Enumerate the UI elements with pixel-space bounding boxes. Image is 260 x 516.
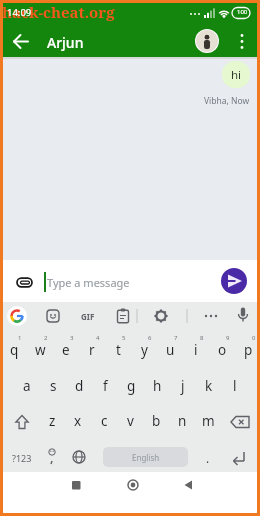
staticText: . xyxy=(206,450,210,466)
button[interactable] xyxy=(66,442,92,474)
button[interactable]: b xyxy=(143,405,169,437)
button[interactable]: q xyxy=(1,334,27,366)
staticText: 8 xyxy=(200,334,204,342)
staticText: 4 xyxy=(96,334,100,342)
staticText: z xyxy=(49,412,56,430)
button[interactable]: e xyxy=(53,334,79,366)
button[interactable]: g xyxy=(118,370,144,402)
button[interactable]: c xyxy=(91,405,117,437)
staticText: hi xyxy=(231,67,242,83)
staticText: o xyxy=(218,341,227,359)
button[interactable] xyxy=(8,406,36,438)
staticText: ?123 xyxy=(12,452,32,464)
button[interactable]: h xyxy=(144,370,170,402)
button[interactable]: m xyxy=(195,405,221,437)
staticText: 14:09 xyxy=(7,6,32,19)
staticText: Type a message xyxy=(47,275,130,290)
staticText: 1 xyxy=(18,334,22,342)
staticText: 5 xyxy=(122,334,126,342)
button[interactable]: d xyxy=(66,370,92,402)
button[interactable] xyxy=(224,406,256,438)
staticText: h xyxy=(153,377,162,395)
staticText: y xyxy=(141,341,148,359)
staticText: d xyxy=(75,377,84,395)
staticText: 100 xyxy=(237,8,248,16)
staticText: 7 xyxy=(174,334,178,342)
staticText: 9 xyxy=(226,334,230,342)
button[interactable] xyxy=(45,308,61,324)
button[interactable]: v xyxy=(117,405,143,437)
staticText: l xyxy=(233,377,237,395)
button[interactable]: English xyxy=(103,447,188,467)
staticText: 2 xyxy=(44,334,48,342)
button[interactable] xyxy=(125,477,141,493)
staticText: j xyxy=(181,377,185,395)
staticText: Vibha, Now xyxy=(204,95,250,107)
button[interactable]: hi xyxy=(222,61,250,88)
staticText: 3 xyxy=(70,334,74,342)
button[interactable]: r xyxy=(79,334,105,366)
button[interactable]: u xyxy=(157,334,183,366)
staticText: m xyxy=(202,412,215,430)
button[interactable]: y xyxy=(131,334,157,366)
button[interactable]: . xyxy=(196,442,220,474)
staticText: r xyxy=(89,341,95,359)
staticText: English xyxy=(132,452,160,463)
staticText: t xyxy=(116,341,121,359)
staticText: i xyxy=(194,341,198,359)
staticText: s xyxy=(50,377,57,395)
staticText: c xyxy=(101,412,108,430)
button[interactable]: s xyxy=(40,370,66,402)
button[interactable]: ?123 xyxy=(6,442,38,474)
button[interactable]: x xyxy=(65,405,91,437)
staticText: GIF xyxy=(81,311,95,322)
button[interactable] xyxy=(14,273,36,292)
button[interactable]: o xyxy=(209,334,235,366)
staticText: k xyxy=(205,377,213,395)
staticText: 6 xyxy=(148,334,152,342)
button[interactable] xyxy=(203,310,221,322)
staticText: Arjun xyxy=(47,33,84,52)
staticText: v xyxy=(127,412,134,430)
button[interactable]: Type a message xyxy=(47,264,207,300)
staticText: a xyxy=(23,377,31,395)
staticText: n xyxy=(178,412,187,430)
staticText: x xyxy=(74,412,82,430)
button[interactable] xyxy=(153,308,169,324)
button[interactable]: l xyxy=(222,370,248,402)
button[interactable]: t xyxy=(105,334,131,366)
staticText: p xyxy=(244,341,253,359)
button[interactable] xyxy=(195,29,219,53)
button[interactable] xyxy=(236,31,248,52)
staticText: 0 xyxy=(252,334,256,342)
button[interactable]: p xyxy=(235,334,260,366)
button[interactable] xyxy=(236,306,250,326)
button[interactable]: w xyxy=(27,334,53,366)
staticText: u xyxy=(166,341,175,359)
button[interactable]: z xyxy=(39,405,65,437)
staticText: g xyxy=(127,377,136,395)
staticText: f xyxy=(103,377,108,395)
button[interactable]: n xyxy=(169,405,195,437)
staticText: w xyxy=(35,341,46,359)
button[interactable] xyxy=(180,477,196,493)
button[interactable]: k xyxy=(196,370,222,402)
staticText: hack-cheat.org xyxy=(2,2,115,22)
button[interactable]: i xyxy=(183,334,209,366)
button[interactable]: j xyxy=(170,370,196,402)
button[interactable] xyxy=(68,477,84,493)
button[interactable] xyxy=(7,306,27,326)
staticText: q xyxy=(10,341,19,359)
button[interactable] xyxy=(226,442,252,474)
button[interactable] xyxy=(221,268,247,294)
button[interactable]: f xyxy=(92,370,118,402)
button[interactable]: GIF xyxy=(76,308,100,324)
button[interactable] xyxy=(8,31,32,52)
button[interactable] xyxy=(40,442,64,474)
staticText: e xyxy=(62,341,70,359)
staticText: b xyxy=(152,412,161,430)
button[interactable]: a xyxy=(14,370,40,402)
button[interactable] xyxy=(116,308,130,324)
